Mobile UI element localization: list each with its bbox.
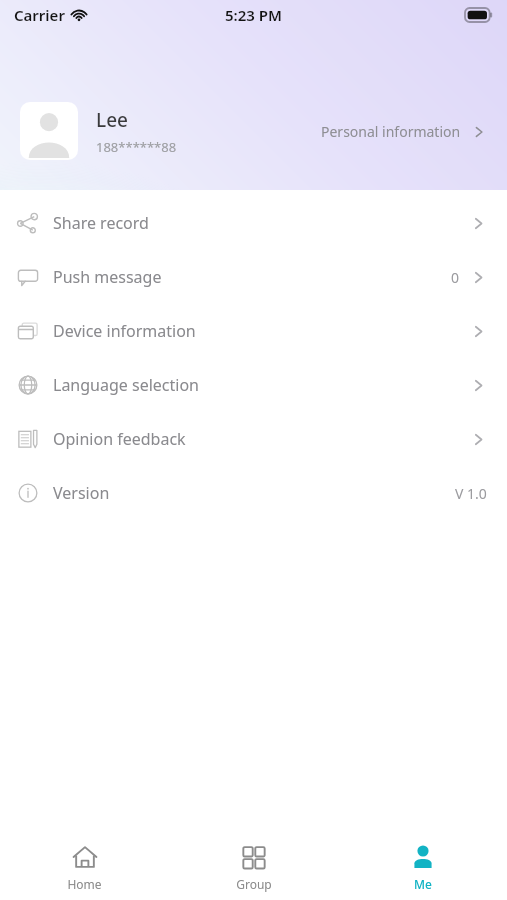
button[interactable]: Device information xyxy=(0,304,507,358)
staticText: Push message xyxy=(53,266,451,288)
staticText: Device information xyxy=(53,320,470,342)
staticText: Opinion feedback xyxy=(53,428,470,450)
button[interactable]: Personal information xyxy=(321,122,487,141)
staticText: 188******88 xyxy=(96,138,177,156)
button[interactable]: Push message xyxy=(0,250,507,304)
button[interactable]: Opinion feedback xyxy=(0,412,507,466)
staticText: 5:23 PM xyxy=(225,5,282,25)
button[interactable]: Group xyxy=(169,822,338,900)
staticText: Lee xyxy=(96,107,128,133)
staticText: Carrier xyxy=(14,5,65,25)
staticText: Share record xyxy=(53,212,470,234)
button[interactable]: Me xyxy=(338,822,507,900)
button[interactable] xyxy=(20,102,78,160)
staticText: Home xyxy=(67,876,102,892)
staticText: V 1.0 xyxy=(455,484,487,503)
staticText: Group xyxy=(236,876,272,892)
staticText: 0 xyxy=(451,268,460,287)
button[interactable]: Version xyxy=(0,466,507,520)
staticText: Version xyxy=(53,482,455,504)
staticText: Language selection xyxy=(53,374,470,396)
staticText: Me xyxy=(414,876,432,892)
button[interactable]: Share record xyxy=(0,196,507,250)
button[interactable]: Language selection xyxy=(0,358,507,412)
staticText: Personal information xyxy=(321,122,461,141)
button[interactable]: Home xyxy=(0,822,169,900)
